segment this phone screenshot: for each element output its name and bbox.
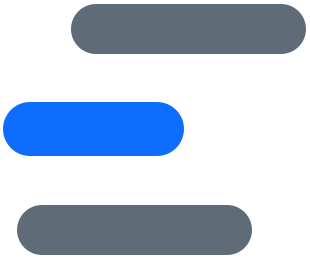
button[interactable]: First bar bbox=[71, 4, 306, 54]
button[interactable]: Third bar bbox=[17, 205, 252, 255]
button[interactable]: Selected bar bbox=[3, 102, 184, 156]
